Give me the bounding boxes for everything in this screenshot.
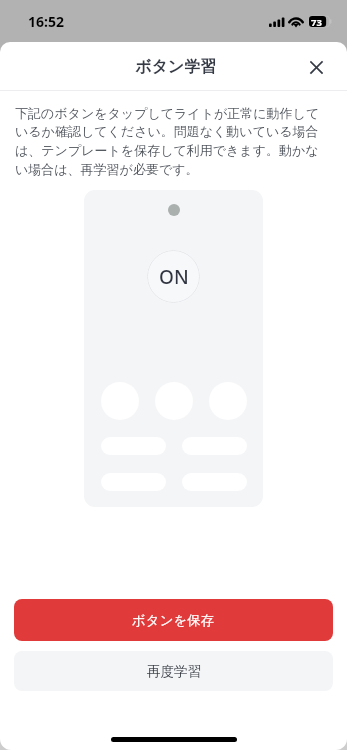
staticText: ボタン学習 xyxy=(135,57,217,77)
button[interactable]: 閉じる xyxy=(304,55,328,79)
staticText: ボタンを保存 xyxy=(132,612,215,629)
staticText: ON xyxy=(159,264,189,290)
staticText: 73 xyxy=(311,16,322,27)
button[interactable]: ON xyxy=(147,250,200,303)
staticText: 16:52 xyxy=(28,12,64,31)
button[interactable]: 再度学習 xyxy=(14,651,333,691)
staticText: 下記のボタンをタップしてライトが正常に動作しているか確認してください。問題なく動… xyxy=(15,105,330,178)
button[interactable]: ボタンを保存 xyxy=(14,599,333,641)
staticText: 再度学習 xyxy=(147,663,201,680)
